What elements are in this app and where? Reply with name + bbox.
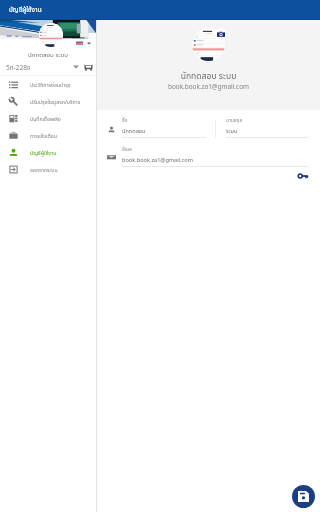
button[interactable]: บัญชีผู้ใช้งาน: [0, 144, 96, 161]
staticText: นามสกุล: [226, 117, 243, 124]
staticText: ปรับปรุงข้อมูลรถ/บริการ: [30, 98, 81, 105]
staticText: ประวัติการซ่อมบำรุง: [30, 81, 71, 88]
staticText: book.book.za1@gmail.com: [122, 156, 193, 164]
staticText: บันทึกเชื้อเพลิง: [30, 115, 61, 122]
staticText: นักทดสอบ ระบบ: [97, 70, 320, 82]
button[interactable]: อีเมล: [122, 146, 308, 167]
staticText: บัญชีผู้ใช้งาน: [30, 149, 57, 156]
staticText: นักทดสอบ ระบบ: [0, 50, 96, 58]
staticText: บัญชีผู้ใช้งาน: [9, 5, 42, 14]
staticText: ออกจากระบบ: [30, 166, 58, 173]
button[interactable]: ชื่อ: [122, 117, 206, 138]
button[interactable]: Language: [76, 38, 91, 48]
button[interactable]: Save: [292, 485, 315, 508]
staticText: การแจ้งเตือน: [30, 132, 58, 139]
button[interactable]: บันทึกเชื้อเพลิง: [0, 110, 96, 127]
staticText: ชื่อ: [122, 117, 128, 124]
button[interactable]: การแจ้งเตือน: [0, 127, 96, 144]
staticText: นักทดสอบ: [122, 127, 146, 135]
button[interactable]: ประวัติการซ่อมบำรุง: [0, 76, 96, 93]
button[interactable]: ออกจากระบบ: [0, 161, 96, 178]
staticText: ระบบ: [226, 127, 238, 135]
button[interactable]: ปรับปรุงข้อมูลรถ/บริการ: [0, 93, 96, 110]
staticText: book.book.za1@gmail.com: [97, 82, 320, 91]
staticText: 5ก-228ง: [6, 63, 31, 72]
button[interactable]: Change password: [295, 168, 311, 184]
staticText: อีเมล: [122, 146, 132, 153]
button[interactable]: Profile picture: [39, 23, 63, 47]
button[interactable]: Change photo: [215, 28, 227, 40]
button[interactable]: 5ก-228ง: [0, 60, 96, 74]
button[interactable]: นามสกุล: [226, 117, 308, 138]
button[interactable]: Profile picture: [192, 28, 225, 61]
